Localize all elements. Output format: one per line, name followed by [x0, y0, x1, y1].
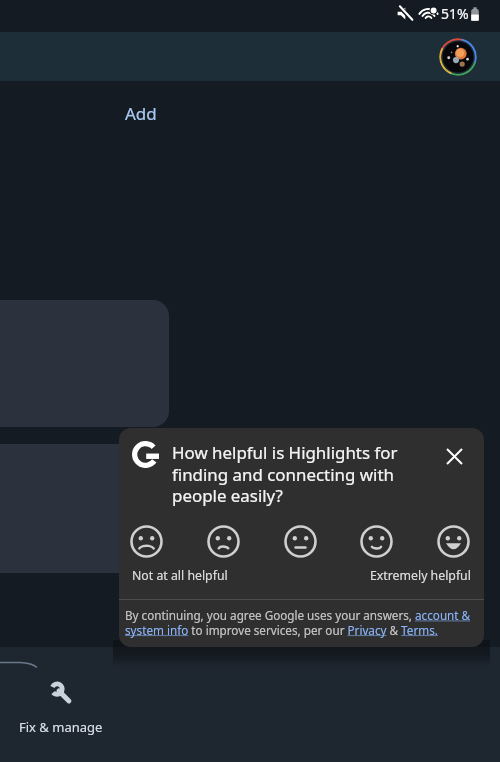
- button[interactable]: Add: [125, 102, 157, 125]
- button[interactable]: Fix & manage: [0, 682, 122, 736]
- staticText: Add: [125, 102, 157, 125]
- button[interactable]: Rating 2: [201, 519, 245, 563]
- button[interactable]: Rating 1: [124, 519, 168, 563]
- staticText: 51%: [441, 4, 469, 23]
- staticText: Not at all helpful: [132, 567, 228, 584]
- button[interactable]: Close: [437, 439, 471, 473]
- staticText: By continuing, you agree Google uses you…: [125, 607, 480, 638]
- staticText: How helpful is Highlights for finding an…: [172, 441, 404, 507]
- button[interactable]: Account: [439, 38, 477, 76]
- button[interactable]: Rating 4: [354, 519, 398, 563]
- staticText: Fix & manage: [19, 718, 103, 736]
- button[interactable]: Rating 3: [278, 519, 322, 563]
- staticText: Extremely helpful: [370, 567, 471, 584]
- button[interactable]: Rating 5: [431, 519, 475, 563]
